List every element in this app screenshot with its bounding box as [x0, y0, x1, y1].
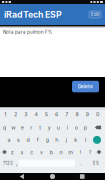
button[interactable]: !	[76, 146, 85, 158]
staticText: iRadTech ESP	[4, 9, 62, 20]
button[interactable]: 3	[21, 108, 31, 120]
staticText: Edit	[91, 12, 99, 17]
staticText: q	[3, 124, 6, 131]
staticText: !	[79, 149, 81, 155]
staticText: t	[39, 124, 41, 131]
staticText: w	[11, 124, 15, 131]
button[interactable]: f	[33, 134, 42, 146]
staticText: .	[80, 160, 82, 167]
staticText: 8	[75, 111, 78, 117]
staticText: u	[57, 124, 60, 131]
button[interactable]: Back	[16, 173, 30, 180]
staticText: p	[84, 124, 87, 131]
staticText: x	[20, 149, 23, 155]
staticText: k	[74, 137, 77, 143]
button[interactable]: e	[18, 122, 27, 134]
staticText: 9	[86, 111, 89, 117]
staticText: Nota para pulmon F%	[3, 29, 52, 35]
button[interactable]: 5	[41, 108, 51, 120]
staticText: h	[55, 137, 58, 143]
button[interactable]: n	[56, 146, 66, 158]
staticText: Delete	[78, 84, 93, 89]
button[interactable]: 9	[82, 108, 92, 120]
button[interactable]: 7	[62, 108, 72, 120]
button[interactable]: s	[14, 134, 23, 146]
button[interactable]: u	[54, 122, 63, 134]
button[interactable]: l	[81, 134, 90, 146]
button[interactable]: Delete	[72, 81, 99, 92]
staticText: s	[17, 137, 20, 143]
staticText: y	[48, 124, 51, 131]
staticText: ?123	[3, 161, 13, 166]
button[interactable]: Recent apps	[75, 173, 89, 180]
staticText: 4	[34, 111, 37, 117]
button[interactable]: p	[81, 122, 90, 134]
staticText: v	[40, 149, 43, 155]
button[interactable]: 0	[92, 108, 102, 120]
button[interactable]: Enter	[93, 136, 101, 144]
staticText: 5	[45, 111, 48, 117]
button[interactable]: r	[27, 122, 36, 134]
button[interactable]: x	[17, 146, 27, 158]
button[interactable]: m	[66, 146, 76, 158]
button[interactable]: Edit	[89, 11, 101, 18]
button[interactable]: ,	[13, 158, 21, 169]
button[interactable]: Caps lock	[95, 149, 102, 156]
staticText: z	[11, 149, 14, 155]
staticText: 1	[4, 111, 6, 117]
button[interactable]: t	[36, 122, 45, 134]
button[interactable]: b	[46, 146, 56, 158]
button[interactable]: g	[42, 134, 52, 146]
staticText: r	[30, 124, 32, 131]
staticText: l	[85, 137, 86, 143]
staticText: e	[21, 124, 24, 131]
staticText: a	[7, 137, 10, 143]
button[interactable]: j	[61, 134, 71, 146]
staticText: ES	[93, 161, 99, 166]
button[interactable]: h	[52, 134, 62, 146]
button[interactable]: y	[45, 122, 54, 134]
button[interactable]: q	[0, 122, 9, 134]
button[interactable]: z	[7, 146, 17, 158]
staticText: c	[30, 149, 33, 155]
button[interactable]: ?	[85, 146, 95, 158]
button[interactable]: w	[9, 122, 18, 134]
button[interactable]: a	[4, 134, 14, 146]
button[interactable]: k	[71, 134, 81, 146]
button[interactable]: 6	[51, 108, 61, 120]
staticText: 6	[55, 111, 58, 117]
staticText: 3	[24, 111, 27, 117]
staticText: ,	[16, 160, 18, 167]
staticText: d	[27, 137, 30, 143]
button[interactable]: 2	[10, 108, 20, 120]
staticText: 7	[65, 111, 68, 117]
staticText: f	[37, 137, 39, 143]
button[interactable]: ?123	[1, 158, 14, 169]
button[interactable]: v	[37, 146, 46, 158]
button[interactable]: .	[77, 158, 85, 169]
staticText: j	[66, 137, 67, 143]
button[interactable]: o	[72, 122, 81, 134]
staticText: 2	[14, 111, 17, 117]
staticText: i	[67, 124, 68, 131]
button[interactable]: 8	[72, 108, 82, 120]
staticText: n	[59, 149, 62, 155]
staticText: o	[75, 124, 78, 131]
staticText: ?	[89, 149, 92, 155]
staticText: m	[68, 149, 73, 155]
button[interactable]: i	[63, 122, 72, 134]
button[interactable]: c	[27, 146, 37, 158]
button[interactable]: d	[23, 134, 33, 146]
staticText: 0	[96, 111, 99, 117]
button[interactable]: 4	[31, 108, 41, 120]
button[interactable]: Shift	[1, 149, 8, 156]
staticText: b	[50, 149, 53, 155]
button[interactable]: 1	[0, 108, 10, 120]
button[interactable]: Backspace	[94, 124, 102, 131]
staticText: g	[46, 137, 49, 143]
button[interactable]: ES	[90, 158, 101, 169]
button[interactable]: Home	[45, 173, 59, 180]
